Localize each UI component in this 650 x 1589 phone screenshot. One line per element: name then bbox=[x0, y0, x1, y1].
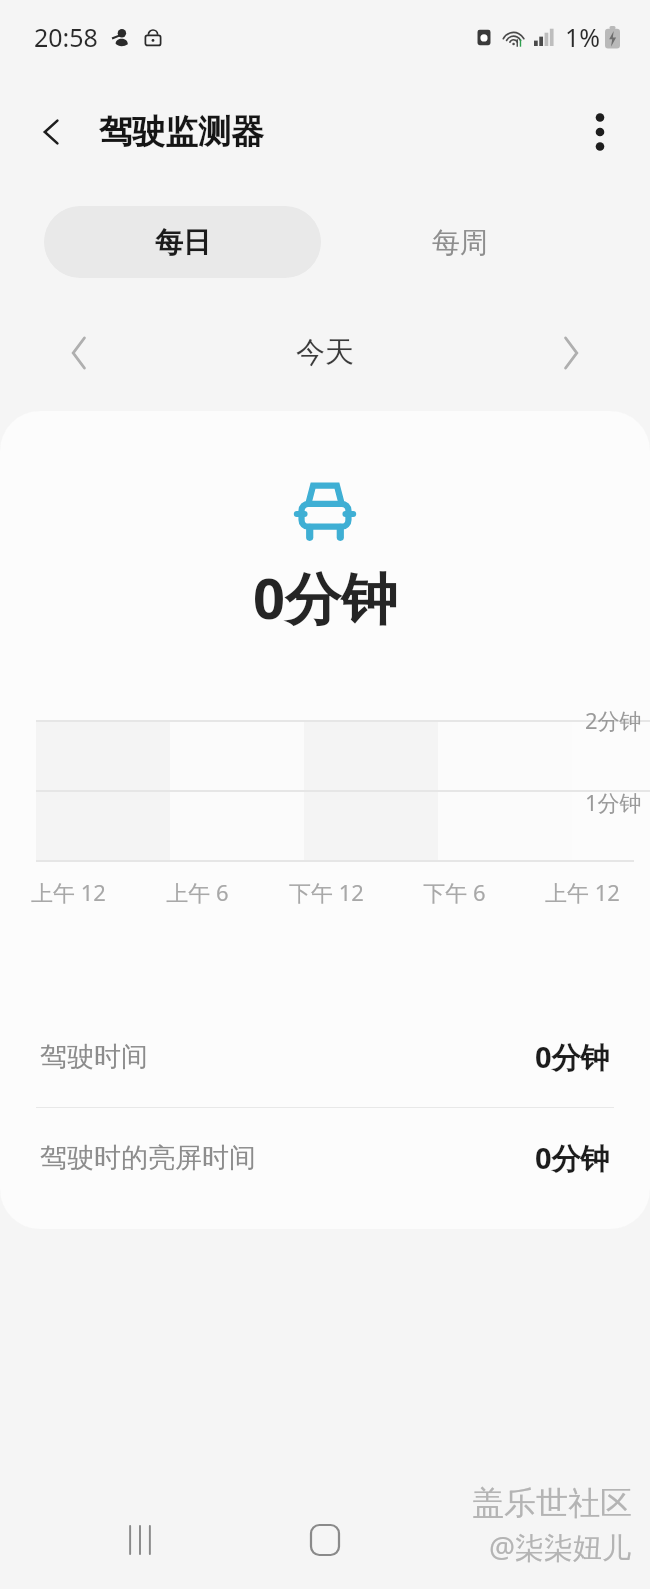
button[interactable]: Next day bbox=[540, 322, 602, 384]
staticText: 每周 bbox=[432, 225, 488, 260]
button[interactable]: Home bbox=[293, 1508, 357, 1572]
staticText: 0分钟 bbox=[535, 1138, 610, 1178]
button[interactable]: Back bbox=[20, 100, 84, 164]
staticText: 下午 12 bbox=[289, 877, 364, 907]
staticText: 驾驶时的亮屏时间 bbox=[40, 1141, 256, 1175]
staticText: 每日 bbox=[155, 225, 211, 260]
staticText: 驾驶时间 bbox=[40, 1040, 148, 1074]
button[interactable]: Previous day bbox=[48, 322, 110, 384]
staticText: 0分钟 bbox=[253, 559, 398, 635]
staticText: 1% bbox=[565, 20, 601, 54]
staticText: 0分钟 bbox=[535, 1037, 610, 1077]
staticText: 上午 12 bbox=[31, 877, 106, 907]
button[interactable]: Recent apps bbox=[108, 1508, 172, 1572]
button[interactable]: 驾驶时间 bbox=[0, 1007, 650, 1107]
button[interactable]: More options bbox=[568, 100, 632, 164]
staticText: 盖乐世社区 bbox=[472, 1483, 632, 1523]
staticText: 驾驶监测器 bbox=[99, 111, 264, 153]
button[interactable]: 每日 bbox=[44, 206, 321, 278]
staticText: 2分钟 bbox=[585, 705, 642, 735]
button[interactable]: 驾驶时的亮屏时间 bbox=[0, 1108, 650, 1208]
staticText: @柒柒妞儿 bbox=[489, 1527, 632, 1567]
staticText: 1分钟 bbox=[585, 787, 642, 817]
button[interactable]: 每周 bbox=[321, 206, 598, 278]
staticText: 下午 6 bbox=[423, 877, 486, 907]
staticText: 20:58 bbox=[34, 20, 98, 54]
staticText: 上午 6 bbox=[166, 877, 229, 907]
staticText: 上午 12 bbox=[545, 877, 620, 907]
staticText: 今天 bbox=[296, 334, 354, 371]
